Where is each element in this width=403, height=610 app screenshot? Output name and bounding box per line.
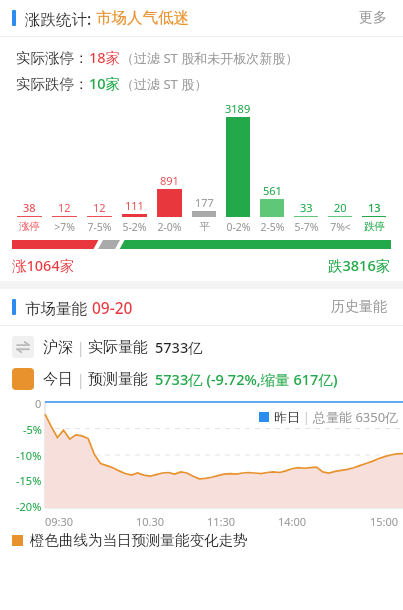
staticText: 市场人气低迷 xyxy=(96,8,189,28)
staticText: 33 xyxy=(300,200,313,215)
staticText: 实际量能 xyxy=(88,338,148,357)
staticText: 平 xyxy=(199,220,210,233)
staticText: 市场量能 xyxy=(25,297,92,318)
staticText: 涨1064家 xyxy=(12,255,75,275)
staticText: 561 xyxy=(263,183,282,198)
other: 切换 xyxy=(12,336,34,358)
button[interactable]: 今日 xyxy=(0,368,403,390)
staticText: 预测量能 xyxy=(88,370,148,389)
staticText: 11:30 xyxy=(207,514,236,529)
button[interactable]: 历史量能 xyxy=(327,294,391,320)
button[interactable]: 更多 xyxy=(355,5,391,31)
staticText: 20 xyxy=(334,200,347,215)
staticText: -15% xyxy=(16,473,42,488)
staticText: 12 xyxy=(93,200,106,215)
staticText: 2-5% xyxy=(260,220,285,234)
staticText: 10.30 xyxy=(136,514,165,529)
staticText: 今日 xyxy=(43,370,73,389)
staticText: 177 xyxy=(195,195,214,210)
staticText: 14:00 xyxy=(278,514,307,529)
staticText: 15:00 xyxy=(370,514,399,529)
staticText: 5733亿 (-9.72%,缩量 617亿) xyxy=(155,369,338,389)
staticText: 18家 xyxy=(89,47,121,67)
staticText: 10家 xyxy=(89,73,121,93)
staticText: 昨日 xyxy=(274,409,300,425)
button[interactable]: 切换 xyxy=(0,336,403,358)
staticText: -10% xyxy=(16,448,42,463)
staticText: 实际涨停： xyxy=(16,49,89,67)
staticText: （过滤 ST 股和未开板次新股） xyxy=(121,49,299,67)
staticText: 总量能 6350亿 xyxy=(313,408,399,426)
staticText: -20% xyxy=(16,499,42,514)
staticText: >7% xyxy=(54,220,75,234)
staticText: 涨停 xyxy=(19,220,40,233)
staticText: 橙色曲线为当日预测量能变化走势 xyxy=(30,531,248,549)
staticText: 09-20 xyxy=(92,297,133,318)
staticText: 5733亿 xyxy=(155,337,203,357)
staticText: （过滤 ST 股） xyxy=(121,75,208,93)
staticText: 5-2% xyxy=(122,220,147,234)
staticText: 涨跌统计: xyxy=(25,8,96,29)
staticText: | xyxy=(73,370,88,389)
staticText: 891 xyxy=(160,173,179,188)
staticText: -5% xyxy=(23,422,42,437)
staticText: 历史量能 xyxy=(331,298,387,316)
staticText: | xyxy=(73,338,88,357)
staticText: 5-7% xyxy=(294,220,319,234)
staticText: 0 xyxy=(35,396,42,411)
staticText: 7%< xyxy=(330,220,351,234)
staticText: 13 xyxy=(368,200,381,215)
staticText: 12 xyxy=(58,200,71,215)
staticText: 38 xyxy=(23,200,36,215)
staticText: 更多 xyxy=(359,9,387,27)
staticText: | xyxy=(300,409,313,425)
staticText: 09:30 xyxy=(45,514,74,529)
staticText: 实际跌停： xyxy=(16,75,89,93)
staticText: 跌停 xyxy=(364,220,385,233)
staticText: 沪深 xyxy=(43,338,73,357)
staticText: 7-5% xyxy=(87,220,112,234)
staticText: 111 xyxy=(125,198,144,213)
staticText: 跌3816家 xyxy=(328,255,391,275)
staticText: 0-2% xyxy=(226,220,251,234)
staticText: 3189 xyxy=(225,101,251,116)
staticText: 2-0% xyxy=(157,220,182,234)
